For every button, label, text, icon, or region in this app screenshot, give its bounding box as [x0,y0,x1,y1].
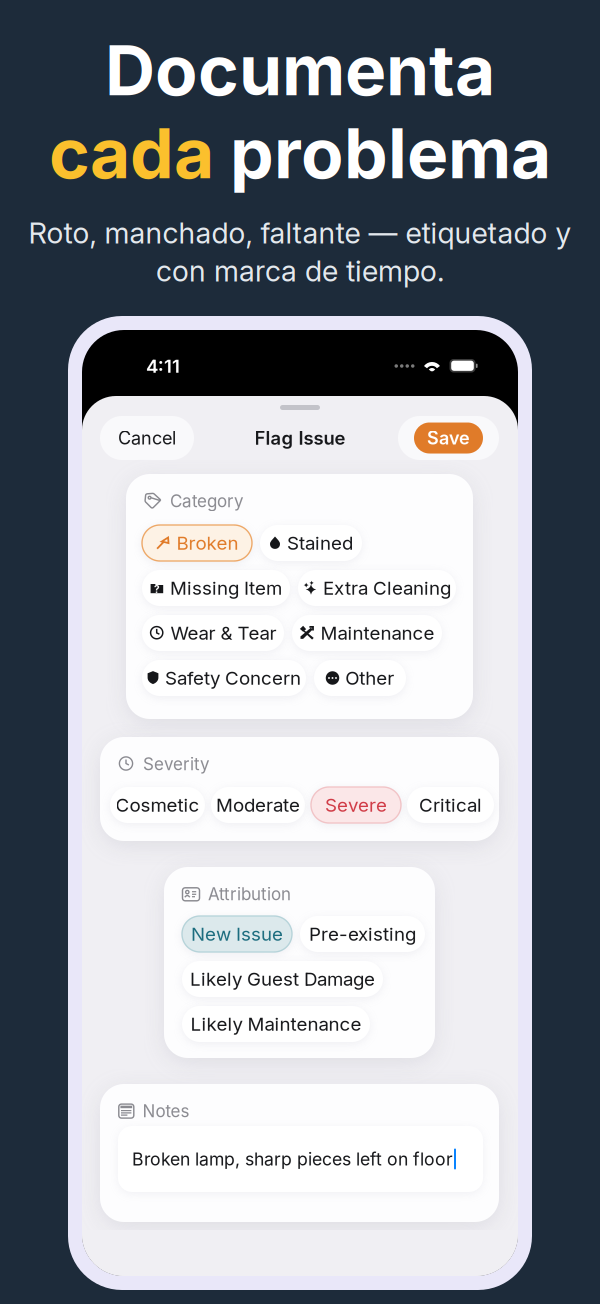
staticText: Broken [176,532,238,554]
staticText: cada [49,111,230,195]
button[interactable]: Severe [311,787,401,823]
staticText: Wear & Tear [170,622,276,644]
button[interactable]: Maintenance [292,615,442,651]
staticText: Documenta [105,28,495,112]
button[interactable]: Stained [260,525,362,561]
button[interactable]: Broken [142,525,252,561]
staticText: Category [170,491,244,511]
button[interactable]: Likely Guest Damage [182,961,383,997]
staticText: con marca de tiempo. [156,253,444,288]
staticText: Maintenance [320,622,434,644]
staticText: Moderate [216,794,300,816]
staticText: ? [154,583,160,595]
staticText: Missing Item [170,577,282,599]
button[interactable]: Other [314,660,406,696]
button[interactable]: Cancel [100,416,194,460]
button[interactable]: Moderate [211,787,305,823]
button[interactable]: ? [142,570,290,606]
staticText: Likely Maintenance [190,1013,361,1035]
staticText: Broken lamp, sharp pieces left on floor [132,1148,453,1170]
staticText: Save [427,427,470,449]
button[interactable]: Wear & Tear [142,615,284,651]
button[interactable]: Critical [407,787,494,823]
staticText: Likely Guest Damage [190,968,375,990]
button[interactable]: Save [398,416,499,460]
staticText: Severe [325,794,387,816]
staticText: Stained [287,532,353,554]
staticText: Roto, manchado, faltante — etiquetado y [28,215,571,250]
staticText: Critical [419,794,482,816]
staticText: Safety Concern [165,667,301,689]
staticText: Cancel [118,427,176,449]
button[interactable]: Extra Cleaning [298,570,456,606]
staticText: problema [230,111,551,195]
button[interactable]: New Issue [182,916,292,952]
button[interactable]: Pre-existing [300,916,425,952]
staticText: 4:11 [146,355,180,377]
staticText: Notes [143,1101,190,1121]
staticText: Attribution [208,884,291,904]
staticText: Severity [143,754,210,774]
button[interactable]: Cosmetic [110,787,205,823]
staticText: Extra Cleaning [323,577,451,599]
staticText: Pre-existing [309,923,416,945]
button[interactable]: Safety Concern [142,660,306,696]
staticText: Flag Issue [254,427,345,449]
staticText: Other [345,667,394,689]
staticText: New Issue [191,923,283,945]
staticText: Cosmetic [115,794,199,816]
button[interactable]: Likely Maintenance [182,1006,370,1042]
